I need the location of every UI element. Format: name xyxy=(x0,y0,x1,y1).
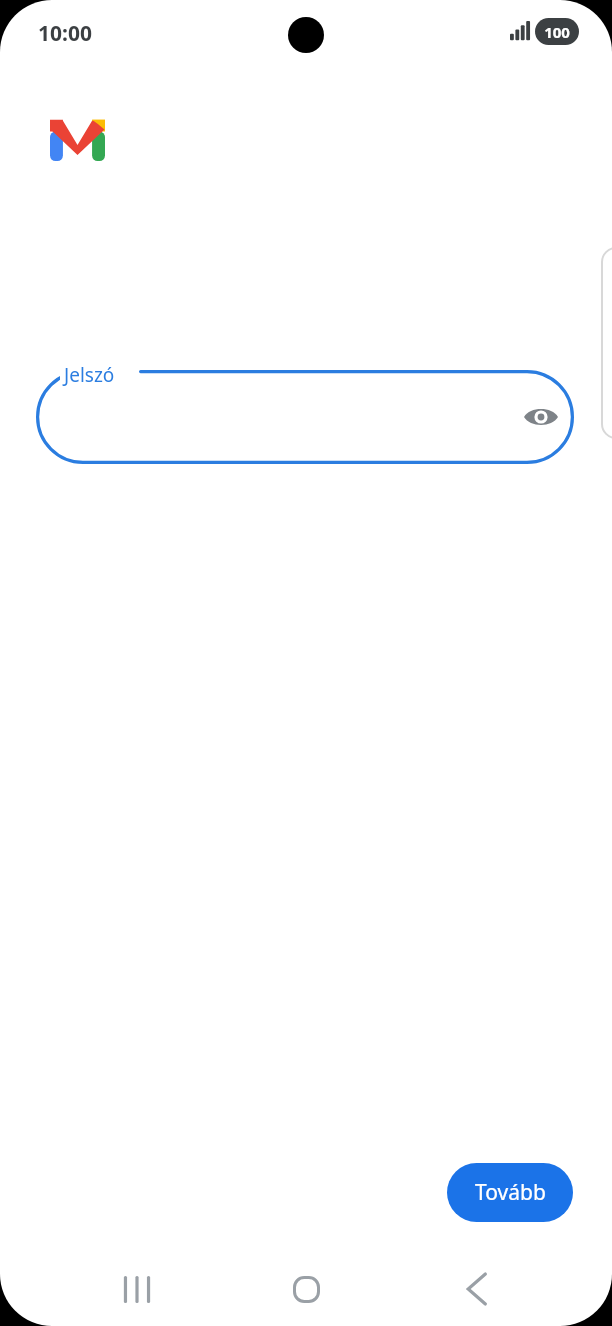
staticText: Tovább xyxy=(475,1178,546,1207)
button[interactable]: Tovább xyxy=(447,1163,573,1222)
button[interactable]: Legutóbbiak xyxy=(107,1259,167,1319)
staticText: 100 xyxy=(544,22,570,42)
button[interactable]: Jelszó megjelenítése xyxy=(517,393,565,441)
button[interactable]: Vissza xyxy=(447,1259,507,1319)
button[interactable]: Kezdőképernyő xyxy=(276,1259,336,1319)
staticText: Jelszó xyxy=(64,362,115,388)
staticText: 10:00 xyxy=(38,19,92,48)
button[interactable]: Jelszó megjelenítése xyxy=(36,370,574,464)
